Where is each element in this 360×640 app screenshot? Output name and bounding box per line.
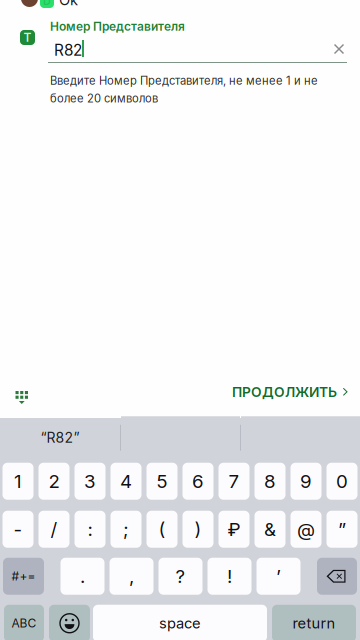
button[interactable]: / [38, 511, 69, 548]
staticText: ! [227, 565, 232, 588]
staticText: ₽ [227, 518, 240, 541]
staticText: @ [297, 518, 315, 541]
staticText: D [43, 0, 51, 7]
button[interactable]: ; [110, 511, 141, 548]
staticText: 6 [192, 470, 204, 493]
staticText: 1 [14, 470, 22, 493]
staticText: ) [194, 518, 201, 541]
button[interactable]: return [272, 605, 356, 640]
button[interactable]: Emoji [49, 605, 90, 640]
staticText: 9 [300, 470, 312, 493]
staticText: . [80, 565, 85, 588]
button[interactable]: “R82” [0, 416, 120, 459]
button[interactable]: Clear text [324, 34, 354, 64]
button[interactable]: 6 [182, 463, 213, 500]
staticText: R82 [54, 41, 82, 60]
button[interactable]: 3 [74, 463, 105, 500]
button[interactable]: ABC [4, 605, 44, 640]
staticText: 4 [120, 470, 132, 493]
button[interactable]: ! [207, 558, 251, 595]
button[interactable]: 4 [110, 463, 141, 500]
button[interactable]: 1 [2, 463, 33, 500]
staticText: - [13, 518, 22, 541]
button[interactable]: #+= [3, 558, 44, 595]
button[interactable]: ) [182, 511, 213, 548]
staticText: ПРОДОЛЖИТЬ [232, 384, 337, 400]
staticText: : [87, 518, 92, 541]
staticText: Номер Представителя [50, 19, 185, 33]
staticText: ’ [276, 565, 281, 588]
button[interactable]: space [93, 605, 267, 640]
staticText: space [159, 614, 201, 632]
button[interactable]: 7 [218, 463, 249, 500]
staticText: Ok [59, 0, 78, 9]
button[interactable]: - [2, 511, 33, 548]
button[interactable]: ₽ [218, 511, 249, 548]
button[interactable]: . [60, 558, 104, 595]
staticText: T [23, 30, 31, 45]
button[interactable]: & [254, 511, 285, 548]
staticText: ABC [11, 616, 36, 630]
button[interactable]: 9 [290, 463, 321, 500]
staticText: 3 [84, 470, 96, 493]
staticText: ” [338, 518, 346, 541]
button[interactable]: 2 [38, 463, 69, 500]
button[interactable]: 0 [326, 463, 357, 500]
staticText: 5 [156, 470, 167, 493]
staticText: #+= [11, 569, 35, 583]
button[interactable]: ПРОДОЛЖИТЬ [232, 379, 349, 405]
staticText: Введите Номер Представителя, не менее 1 … [50, 74, 318, 105]
button[interactable]: ( [146, 511, 177, 548]
button[interactable]: ” [326, 511, 357, 548]
button[interactable]: ? [158, 558, 202, 595]
button[interactable]: 5 [146, 463, 177, 500]
staticText: ; [123, 518, 129, 541]
staticText: / [50, 518, 57, 541]
button[interactable]: , [109, 558, 153, 595]
staticText: return [292, 614, 335, 632]
staticText: 2 [48, 470, 59, 493]
staticText: 7 [228, 470, 239, 493]
staticText: & [264, 518, 276, 541]
button[interactable]: Delete [317, 558, 357, 595]
staticText: 8 [264, 470, 276, 493]
button[interactable]: 8 [254, 463, 285, 500]
button[interactable]: Hide keyboard [7, 384, 37, 410]
staticText: ? [175, 565, 185, 588]
button[interactable]: ’ [256, 558, 300, 595]
staticText: ( [158, 518, 165, 541]
staticText: 0 [336, 470, 348, 493]
button[interactable]: @ [290, 511, 321, 548]
button[interactable]: : [74, 511, 105, 548]
staticText: , [129, 565, 134, 588]
staticText: “R82” [40, 429, 79, 446]
